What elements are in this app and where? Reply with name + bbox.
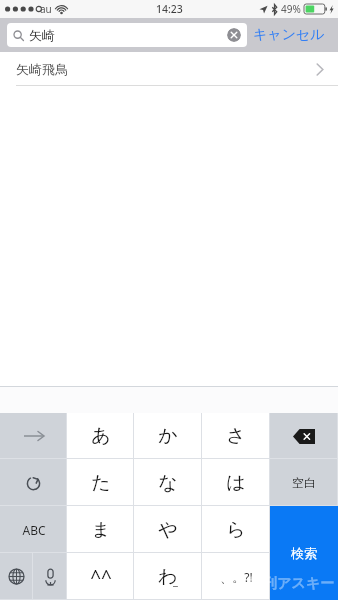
staticText: な: [158, 471, 178, 495]
staticText: か: [158, 424, 178, 448]
button[interactable]: ^^: [67, 553, 134, 600]
staticText: 検索: [291, 545, 317, 561]
button[interactable]: は: [202, 459, 270, 506]
staticText: は: [226, 471, 246, 495]
button[interactable]: さ: [202, 413, 270, 459]
staticText: 矢崎: [29, 27, 55, 43]
button[interactable]: Clear text: [227, 28, 241, 42]
button[interactable]: 空白: [270, 459, 338, 506]
staticText: ら: [226, 518, 246, 542]
button[interactable]: か: [134, 413, 202, 459]
staticText: 49%: [281, 2, 301, 16]
staticText: や: [158, 518, 178, 542]
button[interactable]: キャンセル: [247, 18, 331, 52]
button[interactable]: Undo: [0, 459, 67, 506]
button[interactable]: や: [134, 506, 202, 553]
staticText: さ: [226, 424, 246, 448]
button[interactable]: Next character: [0, 413, 67, 459]
staticText: あ: [91, 424, 111, 448]
button[interactable]: Switch keyboard: [0, 553, 33, 600]
staticText: 週刊アスキー: [249, 575, 334, 593]
button[interactable]: ら: [202, 506, 270, 553]
button[interactable]: わ: [134, 553, 202, 600]
button[interactable]: ま: [67, 506, 134, 553]
staticText: 空白: [292, 475, 316, 490]
button[interactable]: ABC: [0, 506, 67, 553]
staticText: ABC: [22, 522, 46, 538]
button[interactable]: 、。?!: [202, 553, 270, 600]
staticText: ^^: [90, 564, 112, 590]
button[interactable]: た: [67, 459, 134, 506]
staticText: た: [91, 471, 111, 495]
staticText: 矢崎飛鳥: [16, 61, 68, 77]
staticText: 、。?!: [220, 569, 253, 585]
staticText: ま: [91, 518, 111, 542]
button[interactable]: 検索: [270, 506, 338, 600]
staticText: au: [40, 2, 52, 16]
staticText: キャンセル: [253, 26, 325, 44]
button[interactable]: 矢崎: [7, 23, 247, 47]
button[interactable]: Dictation: [33, 553, 67, 600]
staticText: わ: [158, 565, 178, 589]
staticText: 14:23: [156, 2, 183, 16]
button[interactable]: あ: [67, 413, 134, 459]
button[interactable]: な: [134, 459, 202, 506]
button[interactable]: Delete: [270, 413, 338, 459]
staticText: _: [173, 573, 178, 588]
button[interactable]: 矢崎飛鳥: [0, 52, 338, 86]
